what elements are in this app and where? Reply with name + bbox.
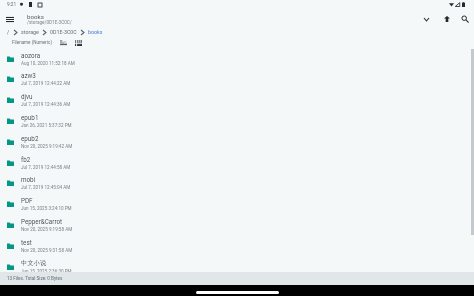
staticText: /storage/0D1E-3C0C/ (27, 20, 72, 25)
staticText: fb2 (21, 156, 31, 163)
button[interactable]: PDF (0, 193, 474, 214)
staticText: 中文小说 (21, 259, 47, 267)
staticText: Filename (Numeric) (12, 40, 52, 45)
staticText: azw3 (21, 72, 36, 79)
staticText: Jul 7, 2019 12:45:04 AM (21, 185, 71, 190)
staticText: Jul 7, 2019 12:44:36 AM (21, 102, 71, 107)
button[interactable]: books (87, 29, 104, 35)
button[interactable]: epub2 (0, 131, 474, 152)
button[interactable]: Sort order (59, 38, 68, 47)
button[interactable]: test (0, 235, 474, 256)
staticText: Jul 7, 2019 12:44:58 AM (21, 165, 71, 170)
staticText: PDF (21, 197, 33, 204)
button[interactable]: djvu (0, 89, 474, 110)
staticText: / (7, 29, 10, 35)
button[interactable]: 中文小说 (0, 256, 474, 277)
staticText: mobi (21, 176, 36, 183)
staticText: 9:21 (7, 2, 17, 8)
staticText: djvu (21, 93, 33, 100)
staticText: Jul 7, 2019 12:44:22 AM (21, 81, 71, 86)
button[interactable]: 0D1E-3C0C (49, 29, 78, 35)
button[interactable]: mobi (0, 172, 474, 193)
button[interactable]: Filename (Numeric) (12, 40, 52, 45)
button[interactable]: Open navigation drawer (2, 12, 17, 27)
button[interactable]: View mode (74, 38, 83, 47)
staticText: epub2 (21, 135, 39, 142)
staticText: 13 Files. Total Size: 0 Bytes (7, 276, 63, 281)
staticText: epub1 (21, 114, 39, 121)
staticText: Pepper&Carrot (21, 218, 63, 225)
button[interactable]: storage (20, 29, 40, 35)
staticText: Aug 10, 2020 11:52:18 AM (21, 61, 75, 66)
staticText: storage (21, 29, 39, 35)
staticText: Jan 26, 2021 5:37:32 PM (21, 123, 72, 128)
staticText: 0D1E-3C0C (50, 29, 77, 35)
staticText: aozora (21, 52, 41, 59)
staticText: Nov 20, 2025 9:19:58 AM (21, 227, 73, 232)
button[interactable]: epub1 (0, 110, 474, 131)
staticText: Nov 20, 2025 9:31:58 AM (21, 248, 73, 253)
button[interactable]: Go up (440, 12, 454, 26)
staticText: books (27, 13, 44, 20)
button[interactable]: aozora (0, 48, 474, 69)
staticText: books (88, 29, 103, 35)
staticText: Nov 20, 2025 9:19:42 AM (21, 144, 73, 149)
staticText: test (21, 239, 32, 246)
staticText: Jun 15, 2025 2:36:30 PM (21, 269, 72, 274)
button[interactable]: Search (458, 12, 472, 26)
button[interactable]: Pepper&Carrot (0, 214, 474, 235)
button[interactable]: / (6, 29, 11, 35)
button[interactable]: fb2 (0, 152, 474, 173)
staticText: Jun 15, 2025 3:24:10 PM (21, 206, 72, 211)
button[interactable]: Expand (419, 12, 433, 26)
button[interactable]: azw3 (0, 68, 474, 89)
